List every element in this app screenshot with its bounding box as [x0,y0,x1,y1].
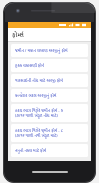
button[interactable]: જમીન / મકાન લખાણ અરજીનું ફોર્મ [11,44,88,57]
button[interactable]: નમુનો નકલ માટે ફોર્મ [11,144,88,157]
staticText: હકક ચકાસણી ફોર્મ [15,62,44,69]
staticText: હ્રદય ભાગ વિગેરે જમીન ફોર્મ - ૮ (૭/૧૨ વા… [15,127,63,139]
staticText: કબ્જેદાર બદલ અરજીનું ફોર્મ [15,92,57,99]
staticText: વારસાઇની નોંધ માટે અરજી ફોર્મ [15,77,63,84]
button[interactable]: કબ્જેદાર બદલ અરજીનું ફોર્મ [11,89,88,102]
staticText: હ્રદય ભાગ વિગેરે જમીન ફોર્મ - ૬ (૭/૧૨ વા… [15,107,63,119]
button[interactable]: હ્રદય ભાગ વિગેરે જમીન ફોર્મ - ૬ (૭/૧૨ વા… [11,104,88,122]
button[interactable]: હ્રદય ભાગ વિગેરે જમીન ફોર્મ - ૮ (૭/૧૨ વા… [11,124,88,142]
button[interactable]: હકક ચકાસણી ફોર્મ [11,59,88,72]
staticText: ફોર્મ્સ [12,30,24,40]
staticText: જમીન / મકાન લખાણ અરજીનું ફોર્મ [15,47,68,54]
button[interactable]: Home [32,171,68,173]
staticText: નમુનો નકલ માટે ફોર્મ [15,147,47,154]
button[interactable]: વારસાઇની નોંધ માટે અરજી ફોર્મ [11,74,88,87]
